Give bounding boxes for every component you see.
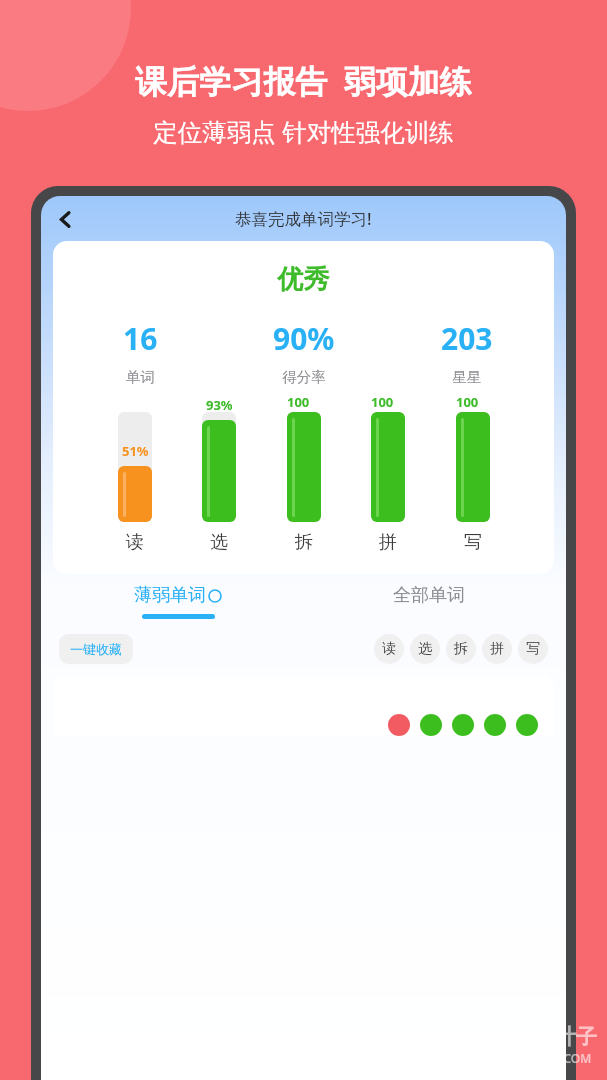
- button[interactable]: 一键收藏: [59, 634, 133, 664]
- staticText: 全部单词: [393, 584, 465, 607]
- staticText: 拼: [490, 640, 504, 658]
- staticText: 选: [210, 531, 228, 554]
- staticText: 100%: [287, 393, 321, 429]
- staticText: 7YZ.COM: [540, 1050, 592, 1066]
- staticText: 薄弱单词: [134, 584, 206, 607]
- staticText: 写: [464, 531, 482, 554]
- staticText: 选: [418, 640, 432, 658]
- staticText: 得分率: [282, 368, 326, 386]
- staticText: 一键收藏: [70, 641, 122, 657]
- staticText: 51%: [122, 442, 149, 460]
- staticText: 恭喜完成单词学习!: [235, 207, 372, 230]
- staticText: 优秀: [53, 263, 554, 296]
- staticText: 写: [526, 640, 540, 658]
- staticText: 90%: [273, 318, 335, 359]
- staticText: 课后学习报告 弱项加练: [135, 59, 472, 103]
- staticText: 单词: [126, 368, 155, 386]
- staticText: 读: [126, 531, 144, 554]
- staticText: 星星: [452, 368, 481, 386]
- button[interactable]: 读: [374, 634, 404, 664]
- button[interactable]: 写: [518, 634, 548, 664]
- button[interactable]: 拆: [446, 634, 476, 664]
- staticText: 100%: [371, 393, 405, 429]
- button[interactable]: 薄弱单词: [53, 584, 303, 619]
- button[interactable]: 选: [410, 634, 440, 664]
- staticText: 七叶子: [534, 1024, 597, 1050]
- staticText: 16: [123, 318, 158, 359]
- button[interactable]: 拼: [482, 634, 512, 664]
- staticText: 读: [382, 640, 396, 658]
- staticText: 拆: [454, 640, 468, 658]
- staticText: 100%: [456, 393, 490, 429]
- button[interactable]: 全部单词: [303, 584, 554, 619]
- staticText: 拼: [379, 531, 397, 554]
- staticText: 93%: [206, 396, 233, 414]
- staticText: 拆: [295, 531, 313, 554]
- staticText: 203: [441, 318, 493, 359]
- staticText: 定位薄弱点 针对性强化训练: [153, 115, 454, 148]
- button[interactable]: 返回: [46, 200, 84, 238]
